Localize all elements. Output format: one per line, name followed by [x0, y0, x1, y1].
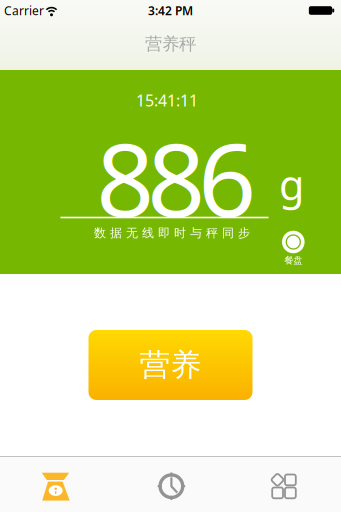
- staticText: 营养秤: [145, 33, 196, 55]
- staticText: 营养: [139, 346, 201, 384]
- staticText: 15:41:11: [136, 90, 198, 111]
- staticText: g: [279, 157, 304, 212]
- button[interactable]: [114, 456, 227, 512]
- button[interactable]: [0, 456, 114, 512]
- staticText: 886: [96, 110, 256, 245]
- staticText: 餐盘: [284, 255, 302, 266]
- staticText: 3:42 PM: [148, 2, 193, 18]
- button[interactable]: [227, 456, 341, 512]
- button[interactable]: 餐盘: [270, 222, 316, 268]
- button[interactable]: 营养: [88, 330, 252, 400]
- staticText: Carrier: [4, 2, 44, 18]
- staticText: 数 据 无 线 即 时 与 秤 同 步: [94, 226, 250, 240]
